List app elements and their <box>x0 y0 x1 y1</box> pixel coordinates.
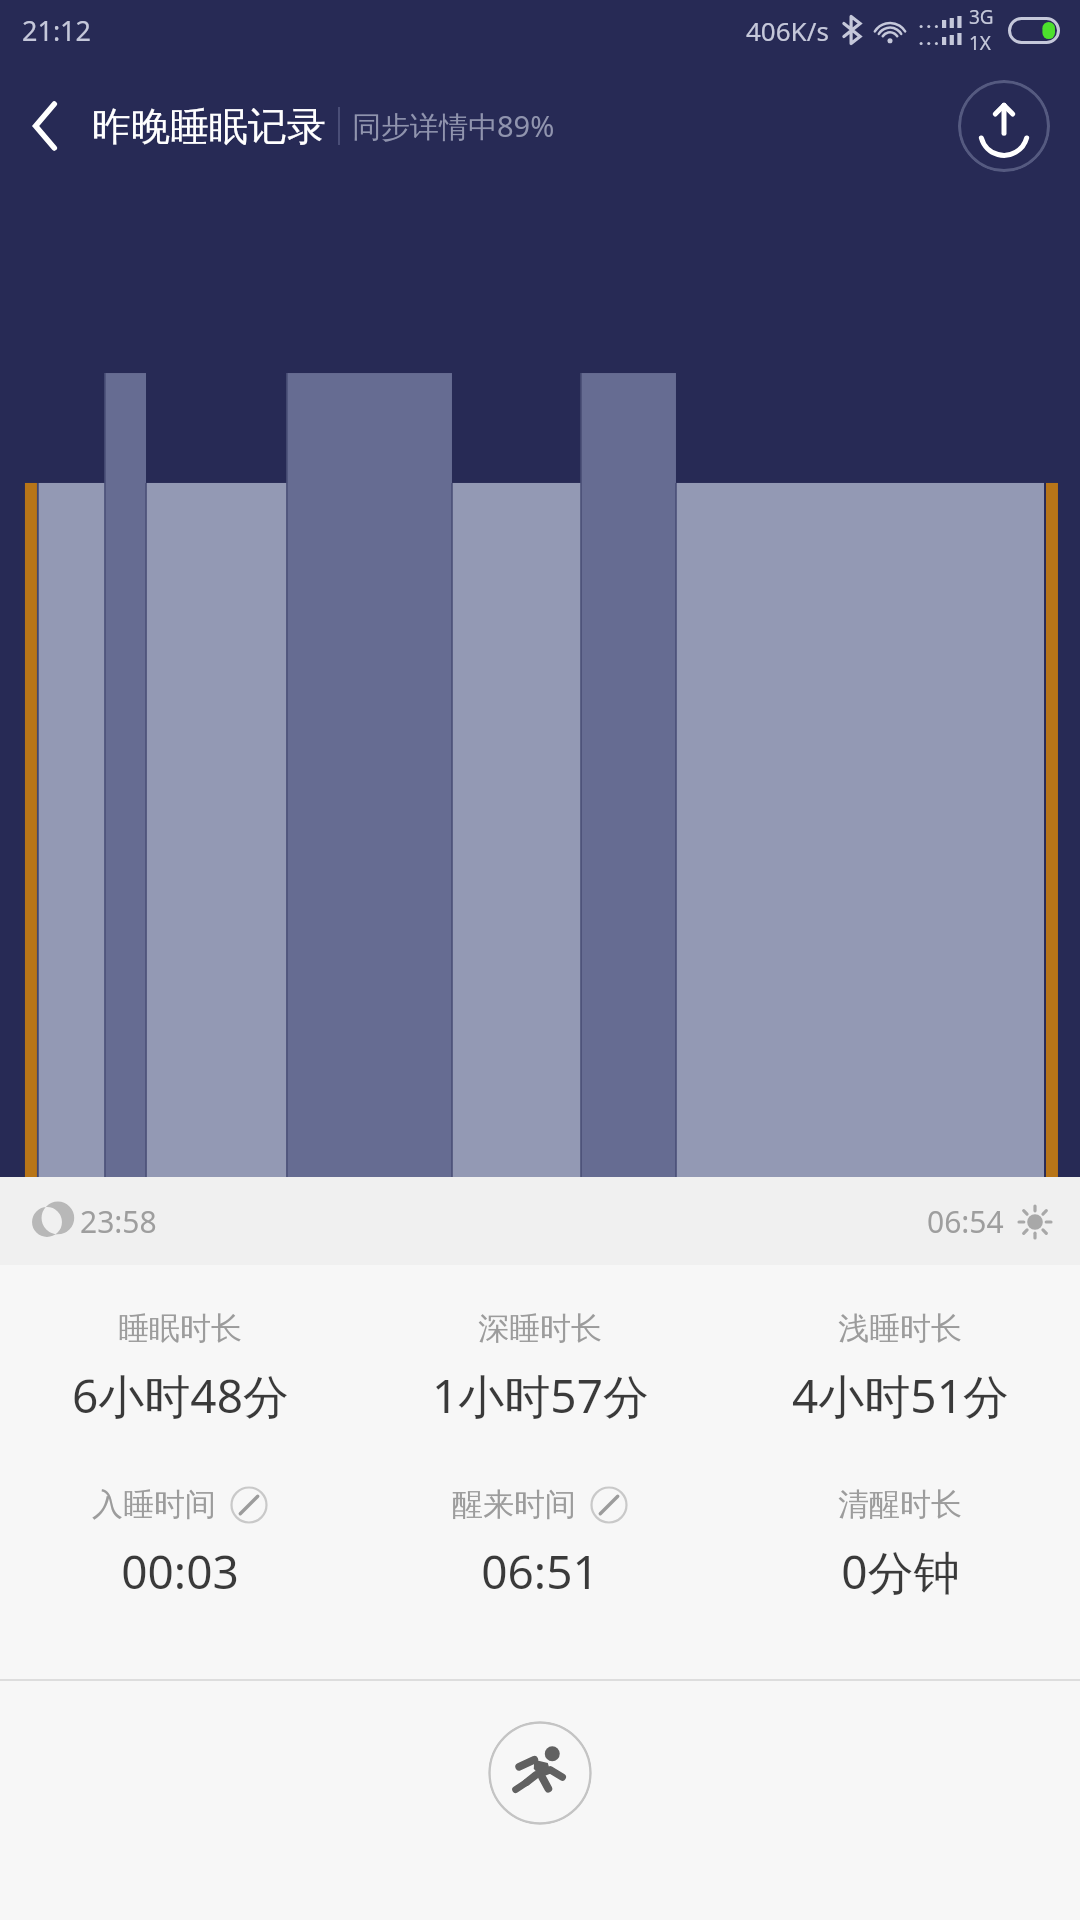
staticText: 4小时51分 <box>792 1364 1009 1427</box>
staticText: 23:58 <box>80 1201 157 1242</box>
staticText: 06:54 <box>927 1201 1004 1242</box>
staticText: 深睡时长 <box>478 1309 602 1348</box>
staticText: 睡眠时长 <box>118 1309 242 1348</box>
staticText: 浅睡时长 <box>838 1309 962 1348</box>
button[interactable]: Back <box>0 60 92 192</box>
staticText: 醒来时间 <box>452 1485 576 1524</box>
staticText: 清醒时长 <box>838 1485 962 1524</box>
staticText: 406K/s <box>746 13 829 48</box>
staticText: 入睡时间 <box>92 1485 216 1524</box>
staticText: 1小时57分 <box>432 1364 649 1427</box>
button[interactable]: Start run <box>488 1721 592 1825</box>
staticText: 同步详情中89% <box>352 106 555 146</box>
staticText: 21:12 <box>22 12 92 49</box>
staticText: 3G <box>969 4 994 30</box>
staticText: 0分钟 <box>841 1540 960 1603</box>
staticText: 00:03 <box>121 1540 239 1603</box>
staticText: 1X <box>969 30 992 56</box>
staticText: 昨晚睡眠记录 <box>92 102 326 151</box>
button[interactable]: 入睡时间 <box>0 1479 360 1609</box>
staticText: 6小时48分 <box>72 1364 289 1427</box>
staticText: 06:51 <box>481 1540 599 1603</box>
button[interactable]: Share <box>958 80 1050 172</box>
button[interactable]: 醒来时间 <box>360 1479 720 1609</box>
